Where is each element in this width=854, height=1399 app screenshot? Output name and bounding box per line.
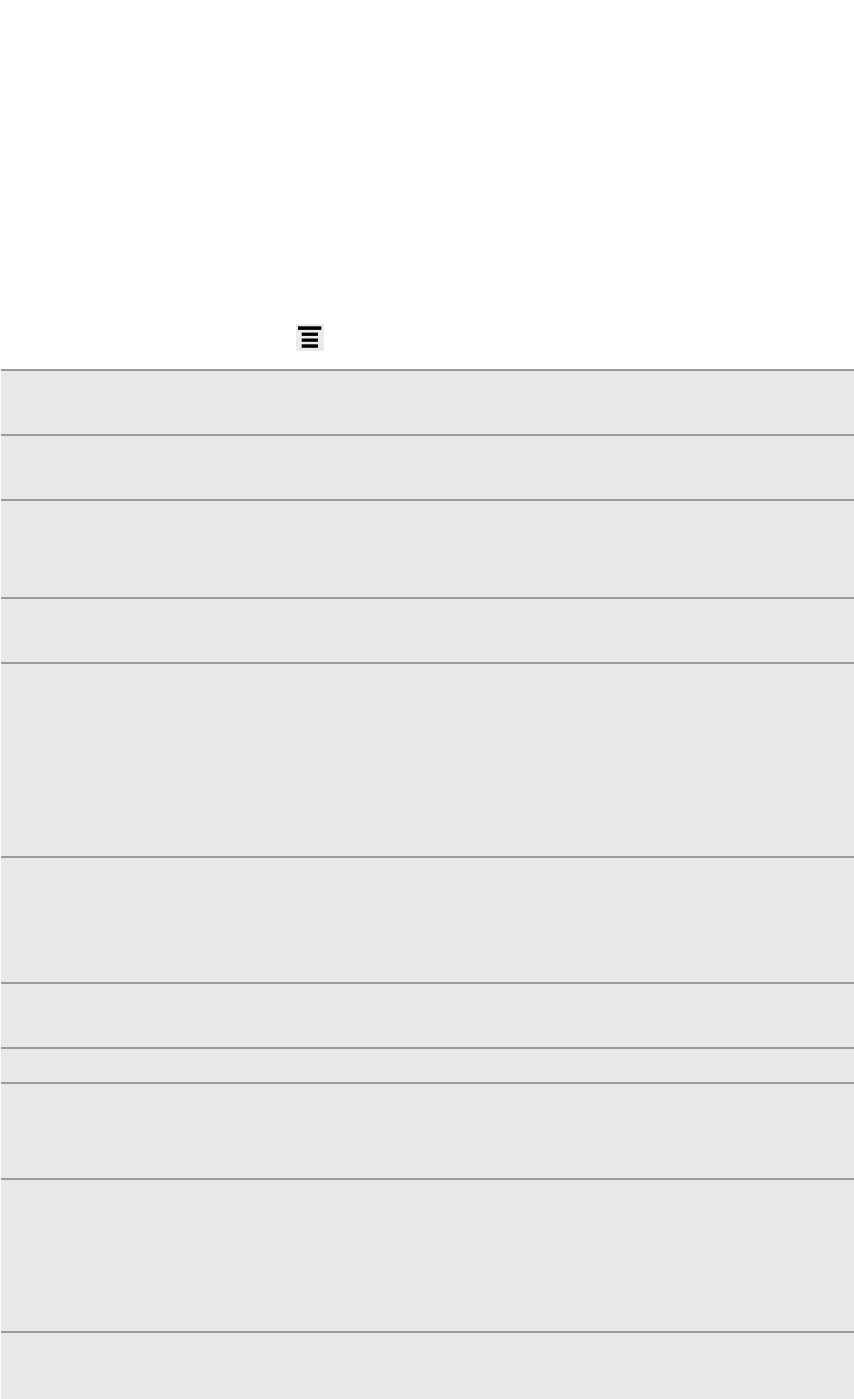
button[interactable]: Missing image placeholder: [296, 324, 324, 351]
